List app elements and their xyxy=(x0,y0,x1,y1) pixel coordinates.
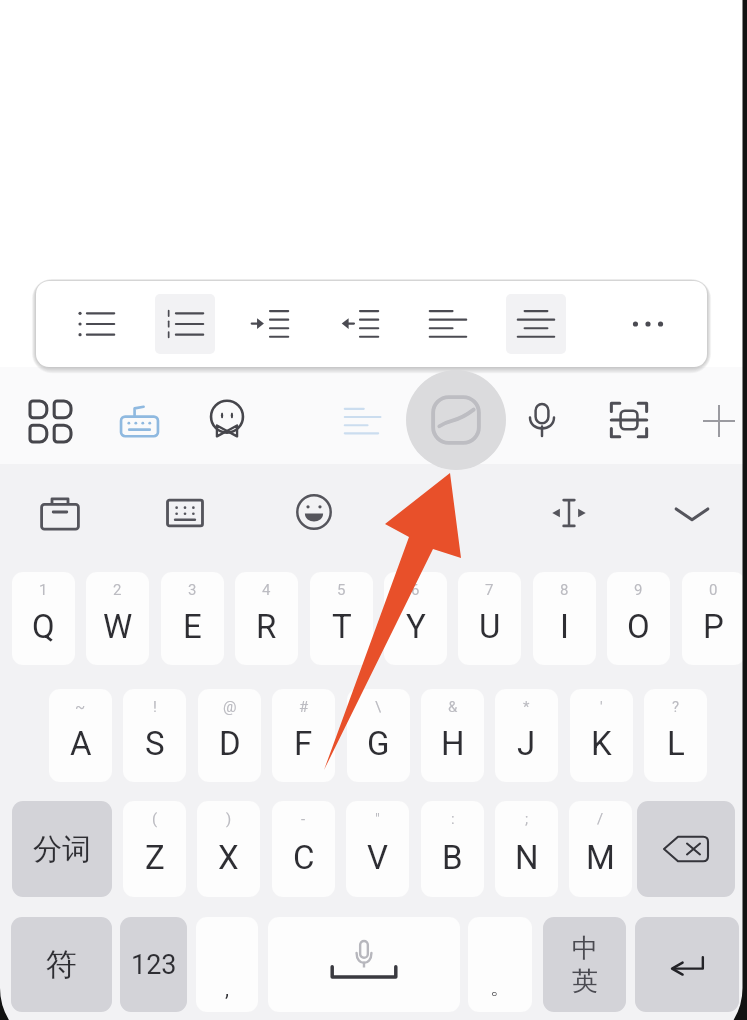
button[interactable]: 0 xyxy=(682,572,745,665)
staticText: / xyxy=(597,810,604,828)
button[interactable]: 2 xyxy=(86,572,149,665)
button[interactable]: 7 xyxy=(458,572,521,665)
staticText: 。 xyxy=(490,975,510,1000)
staticText: R xyxy=(256,607,277,646)
button[interactable]: Bulleted list xyxy=(66,294,126,354)
staticText: ' xyxy=(600,698,603,716)
button[interactable]: 。 xyxy=(468,917,532,1012)
button[interactable]: Backspace xyxy=(637,801,735,897)
staticText: 7 xyxy=(485,581,494,599)
button[interactable]: More options xyxy=(618,294,678,354)
staticText: Q xyxy=(32,607,55,646)
button[interactable]: Numbered list xyxy=(155,294,215,354)
button[interactable]: ; xyxy=(495,801,558,897)
button[interactable]: 1 xyxy=(12,572,75,665)
button[interactable]: Layouts xyxy=(152,480,218,546)
staticText: W xyxy=(103,607,133,646)
staticText: E xyxy=(183,607,202,646)
staticText: T xyxy=(332,607,352,646)
staticText: @ xyxy=(223,698,237,716)
staticText: U xyxy=(479,607,501,646)
staticText: F xyxy=(294,724,313,763)
staticText: 123 xyxy=(131,949,177,981)
button[interactable]: , xyxy=(196,917,258,1012)
button[interactable]: Align left xyxy=(418,294,478,354)
button[interactable]: Voice input xyxy=(509,387,575,453)
button[interactable]: 3 xyxy=(161,572,224,665)
staticText: ; xyxy=(525,810,529,828)
button[interactable]: 中 xyxy=(543,917,626,1012)
button[interactable]: \ xyxy=(347,689,410,782)
staticText: I xyxy=(560,607,569,646)
button[interactable]: Keyboard xyxy=(106,388,172,454)
button[interactable]: ' xyxy=(570,689,633,782)
button[interactable]: # xyxy=(272,689,335,782)
staticText: " xyxy=(375,810,380,828)
button[interactable]: 5 xyxy=(310,572,373,665)
staticText: ! xyxy=(153,698,157,716)
button[interactable]: ~ xyxy=(49,689,112,782)
button[interactable]: 6 xyxy=(384,572,447,665)
staticText: J xyxy=(517,724,536,763)
staticText: 6 xyxy=(411,581,420,599)
button[interactable]: 分词 xyxy=(12,801,112,897)
staticText: & xyxy=(448,698,458,716)
staticText: ( xyxy=(152,810,158,828)
staticText: 英 xyxy=(572,965,598,998)
button[interactable]: Emoji xyxy=(281,479,347,545)
button[interactable]: Handwriting input xyxy=(406,370,506,470)
staticText: 4 xyxy=(262,581,271,599)
button[interactable]: " xyxy=(346,801,409,897)
button[interactable]: Decrease indent xyxy=(330,294,390,354)
button[interactable]: / xyxy=(569,801,632,897)
button[interactable]: 9 xyxy=(607,572,670,665)
button[interactable]: Clipboard xyxy=(27,481,93,547)
button[interactable]: ( xyxy=(123,801,186,897)
staticText: Z xyxy=(145,838,165,877)
staticText: - xyxy=(301,810,306,828)
button[interactable]: 4 xyxy=(235,572,298,665)
staticText: 1 xyxy=(39,581,48,599)
staticText: Y xyxy=(406,607,426,646)
staticText: * xyxy=(523,698,530,716)
staticText: : xyxy=(451,810,455,828)
button[interactable]: Text style xyxy=(330,388,396,454)
button[interactable]: ! xyxy=(123,689,186,782)
staticText: 0 xyxy=(709,581,718,599)
staticText: N xyxy=(515,838,539,877)
button[interactable]: Add xyxy=(686,388,747,454)
staticText: H xyxy=(441,724,465,763)
staticText: S xyxy=(145,724,165,763)
staticText: ~ xyxy=(75,698,86,716)
button[interactable]: ? xyxy=(644,689,707,782)
button[interactable]: - xyxy=(272,801,335,897)
button[interactable]: Move cursor xyxy=(536,480,602,546)
staticText: X xyxy=(218,838,239,877)
button[interactable]: : xyxy=(421,801,484,897)
button[interactable]: Space xyxy=(268,917,460,1012)
button[interactable]: Increase indent xyxy=(240,294,300,354)
staticText: G xyxy=(367,724,390,763)
button[interactable]: Apps xyxy=(17,388,83,454)
button[interactable]: Align centre xyxy=(506,294,566,354)
staticText: # xyxy=(299,698,309,716)
button[interactable]: Hide keyboard xyxy=(659,481,725,547)
staticText: 9 xyxy=(634,581,643,599)
staticText: D xyxy=(219,724,241,763)
button[interactable]: Stickers xyxy=(194,387,260,453)
button[interactable]: & xyxy=(421,689,484,782)
button[interactable]: 符 xyxy=(11,917,112,1012)
staticText: K xyxy=(591,724,612,763)
button[interactable]: ) xyxy=(197,801,260,897)
button[interactable]: 123 xyxy=(120,917,187,1012)
staticText: 5 xyxy=(337,581,346,599)
button[interactable]: * xyxy=(495,689,558,782)
staticText: ) xyxy=(226,810,232,828)
staticText: 8 xyxy=(560,581,569,599)
staticText: V xyxy=(367,838,389,877)
staticText: 中 xyxy=(572,932,598,965)
button[interactable]: @ xyxy=(198,689,261,782)
button[interactable]: Enter xyxy=(635,917,739,1012)
button[interactable]: 8 xyxy=(533,572,596,665)
button[interactable]: Scan text xyxy=(596,387,662,453)
